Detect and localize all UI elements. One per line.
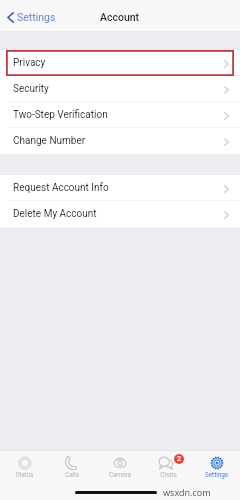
button[interactable]: Privacy bbox=[0, 50, 240, 76]
staticText: Two-Step Verification bbox=[13, 109, 108, 121]
button[interactable]: Status bbox=[0, 456, 48, 488]
staticText: Delete My Account bbox=[13, 208, 97, 220]
button[interactable]: Request Account Info bbox=[0, 175, 240, 201]
staticText: Camera bbox=[109, 471, 131, 478]
staticText: Request Account Info bbox=[13, 182, 109, 194]
button[interactable]: Two-Step Verification bbox=[0, 102, 240, 128]
staticText: 2 bbox=[177, 455, 181, 463]
staticText: Calls bbox=[65, 471, 79, 478]
button[interactable]: Settings bbox=[0, 0, 62, 31]
staticText: wsxdn.com bbox=[163, 486, 211, 498]
button[interactable]: Settings bbox=[192, 456, 240, 488]
staticText: Security bbox=[13, 83, 49, 95]
staticText: Privacy bbox=[13, 57, 46, 69]
staticText: Change Number bbox=[13, 135, 86, 147]
button[interactable]: Security bbox=[0, 76, 240, 102]
button[interactable]: Camera bbox=[96, 456, 144, 488]
button[interactable]: Chats bbox=[144, 456, 192, 488]
staticText: Status bbox=[15, 471, 34, 478]
staticText: Chats bbox=[160, 471, 177, 478]
button[interactable]: Delete My Account bbox=[0, 201, 240, 227]
button[interactable]: Change Number bbox=[0, 128, 240, 154]
staticText: Settings bbox=[17, 11, 56, 23]
staticText: Settings bbox=[205, 471, 228, 478]
staticText: Account bbox=[100, 11, 140, 23]
button[interactable]: Calls bbox=[48, 456, 96, 488]
